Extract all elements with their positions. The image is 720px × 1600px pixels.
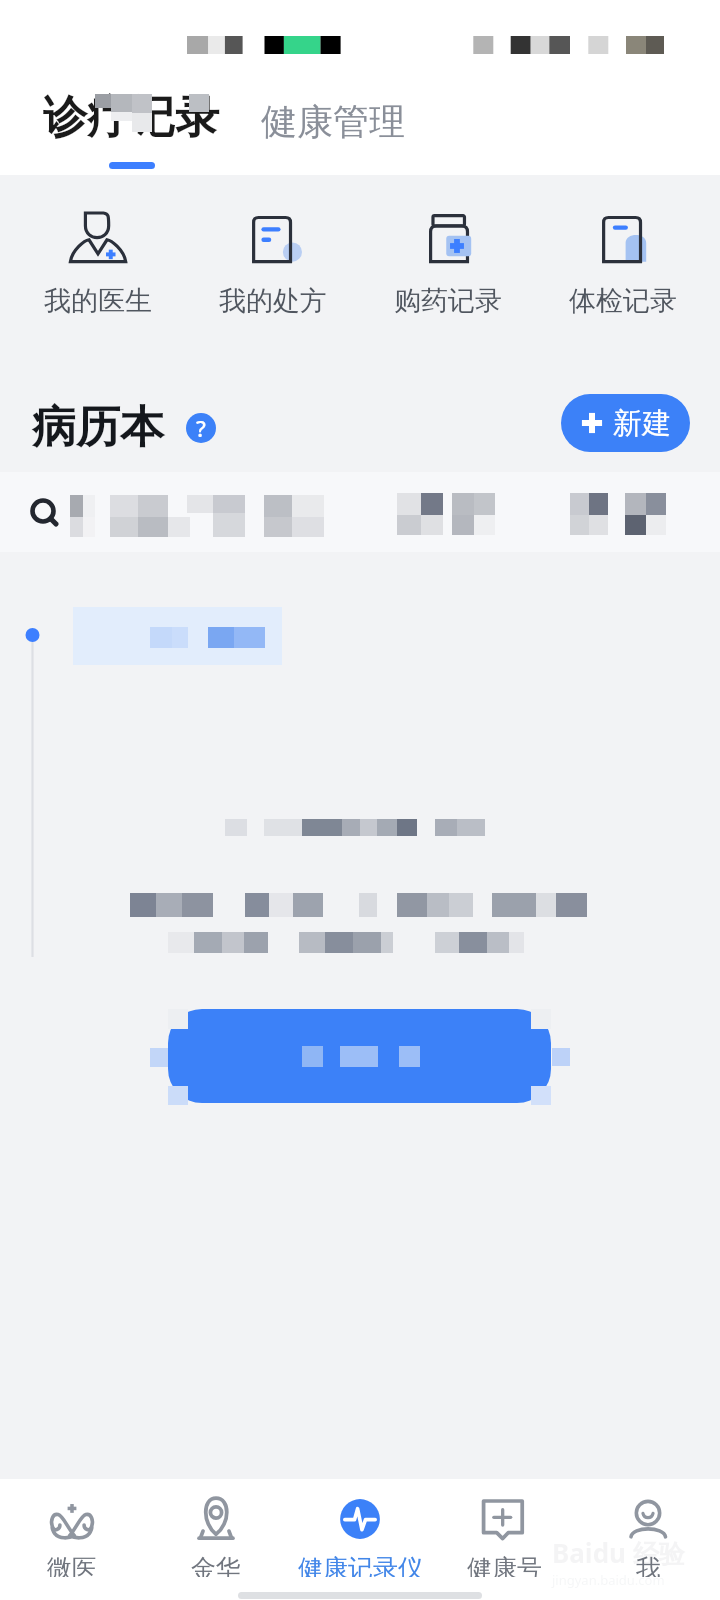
button[interactable]: 健康记录仪 [288,1479,432,1577]
button[interactable]: 金华 [144,1479,288,1577]
staticText: 微医 [47,1553,97,1577]
staticText: 健康号 [467,1553,542,1577]
button[interactable]: 我 [576,1479,720,1577]
staticText: Baidu 经验 [552,1535,685,1571]
button[interactable]: 健康管理 [261,99,405,144]
staticText: 购药记录 [394,284,502,318]
button[interactable]: 搜索 [0,472,720,552]
button[interactable]: 病历本 [32,400,216,455]
button[interactable]: 微医 [0,1479,144,1577]
button[interactable]: 健康号 [432,1479,576,1577]
button[interactable]: 我的处方 [185,175,360,320]
button[interactable]: 诊疗记录 [43,90,219,145]
staticText: 金华 [191,1553,241,1577]
button[interactable]: 我的医生 [10,175,185,320]
button[interactable]: 购药记录 [360,175,535,320]
button[interactable]: 体检记录 [535,175,710,320]
other: 帮助 [186,413,216,443]
staticText: ? [196,413,206,443]
staticText: 我的处方 [219,284,327,318]
staticText: 体检记录 [569,284,677,318]
button[interactable]: 去添加 [168,1009,551,1103]
staticText: 健康记录仪 [298,1553,423,1577]
staticText: 病历本 [32,400,164,455]
staticText: jingyan.baidu.com [552,1571,665,1589]
staticText: 我 [636,1553,661,1577]
button[interactable]: 新建 [561,394,690,452]
staticText: 我的医生 [44,284,152,318]
staticText: 新建 [613,405,671,442]
